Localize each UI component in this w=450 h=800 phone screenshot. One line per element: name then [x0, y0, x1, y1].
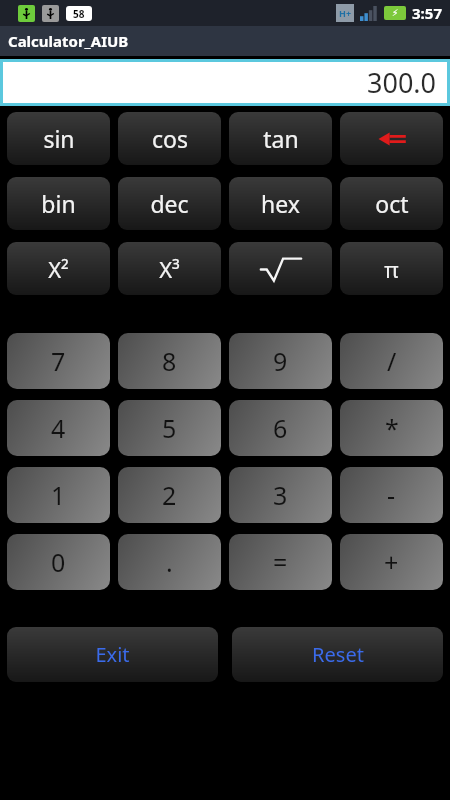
button[interactable]: X² [7, 242, 110, 295]
staticText: hex [261, 188, 300, 219]
button[interactable]: 6 [229, 400, 332, 456]
button[interactable]: + [340, 534, 443, 590]
button[interactable]: Reset [232, 627, 443, 682]
staticText: 5 [162, 411, 177, 445]
staticText: X³ [159, 254, 180, 284]
button[interactable]: 8 [118, 333, 221, 389]
button[interactable]: X³ [118, 242, 221, 295]
staticText: X² [48, 254, 69, 284]
button[interactable]: = [229, 534, 332, 590]
button[interactable]: Backspace [340, 112, 443, 165]
staticText: 1 [51, 478, 66, 512]
button[interactable]: / [340, 333, 443, 389]
button[interactable]: hex [229, 177, 332, 230]
button[interactable]: dec [118, 177, 221, 230]
staticText: 2 [162, 478, 177, 512]
staticText: = [273, 545, 288, 579]
button[interactable]: bin [7, 177, 110, 230]
staticText: 300.0 [367, 64, 437, 101]
button[interactable]: cos [118, 112, 221, 165]
button[interactable]: 3 [229, 467, 332, 523]
staticText: dec [150, 188, 189, 219]
button[interactable]: 2 [118, 467, 221, 523]
staticText: / [387, 344, 397, 378]
staticText: π [384, 254, 399, 284]
button[interactable]: . [118, 534, 221, 590]
staticText: + [384, 545, 399, 579]
button[interactable]: oct [340, 177, 443, 230]
staticText: * [385, 411, 399, 445]
staticText: 58 [73, 7, 85, 21]
staticText: - [387, 478, 396, 512]
staticText: 8 [162, 344, 177, 378]
button[interactable]: π [340, 242, 443, 295]
button[interactable]: 9 [229, 333, 332, 389]
button[interactable]: 7 [7, 333, 110, 389]
staticText: 6 [273, 411, 288, 445]
staticText: bin [41, 188, 76, 219]
staticText: H+ [339, 7, 352, 19]
staticText: oct [375, 188, 409, 219]
button[interactable]: * [340, 400, 443, 456]
staticText: 3 [273, 478, 288, 512]
staticText: . [166, 545, 173, 579]
staticText: sin [43, 123, 75, 154]
button[interactable]: 5 [118, 400, 221, 456]
button[interactable]: - [340, 467, 443, 523]
button[interactable]: sin [7, 112, 110, 165]
staticText: 4 [51, 411, 66, 445]
staticText: cos [152, 123, 188, 154]
staticText: Reset [312, 641, 364, 668]
staticText: Calculator_AIUB [8, 31, 129, 51]
button[interactable]: Square root [229, 242, 332, 295]
staticText: 3:57 [412, 3, 442, 23]
staticText: 0 [51, 545, 66, 579]
staticText: ⚡ [392, 8, 399, 18]
button[interactable]: 0 [7, 534, 110, 590]
staticText: Exit [95, 641, 130, 668]
staticText: tan [263, 123, 299, 154]
button[interactable]: 4 [7, 400, 110, 456]
staticText: 7 [51, 344, 66, 378]
button[interactable]: 1 [7, 467, 110, 523]
staticText: 9 [273, 344, 288, 378]
button[interactable]: tan [229, 112, 332, 165]
button[interactable]: Exit [7, 627, 218, 682]
